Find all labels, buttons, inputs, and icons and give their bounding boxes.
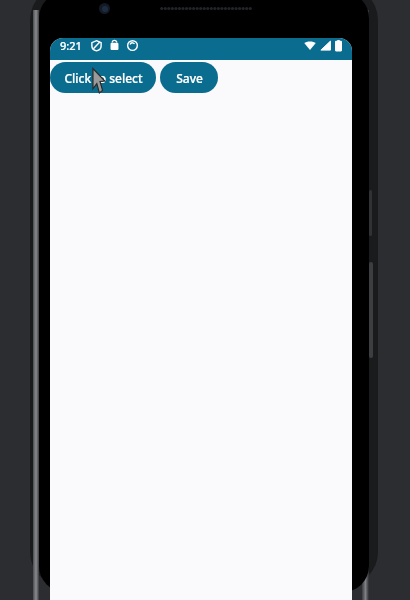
button[interactable]: Save <box>160 62 218 93</box>
staticText: Click to select <box>64 70 143 86</box>
staticText: Save <box>176 70 203 86</box>
button[interactable]: Click to select <box>50 62 156 93</box>
staticText: 9:21 <box>60 38 82 53</box>
